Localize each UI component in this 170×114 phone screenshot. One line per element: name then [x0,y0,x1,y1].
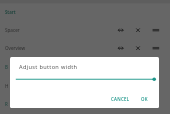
staticText: R [5,101,8,107]
button[interactable]: Overview [0,39,170,57]
staticText: OK [141,96,148,102]
staticText: B [5,64,8,70]
staticText: Spacer [5,27,20,33]
staticText: H [5,83,9,89]
button[interactable] [108,96,131,105]
staticText: Overview [5,45,26,51]
staticText: Adjust button width [19,63,78,71]
button[interactable]: Spacer [0,21,170,39]
button[interactable] [138,96,151,105]
staticText: Start [5,9,16,15]
staticText: CANCEL [111,96,130,102]
